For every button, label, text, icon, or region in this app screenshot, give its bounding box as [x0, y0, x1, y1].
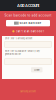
- staticText: Scan barcode to add account: [4, 14, 51, 17]
- staticText: Enter the 16-character security key: [4, 50, 39, 52]
- staticText: Samsung account: [20, 90, 36, 93]
- staticText: Add Account: [17, 3, 39, 8]
- staticText: generated online: [4, 53, 20, 55]
- staticText: Done: [34, 68, 39, 71]
- button[interactable]: Can't scan barcode?: [12, 29, 44, 33]
- staticText: Scan Barcode: [19, 21, 41, 25]
- staticText: Can't scan barcode?: [16, 30, 44, 33]
- button[interactable]: Scan Barcode: [6, 20, 50, 26]
- button[interactable]: Done: [31, 67, 42, 72]
- staticText: Enter your Samsung account: [4, 37, 32, 40]
